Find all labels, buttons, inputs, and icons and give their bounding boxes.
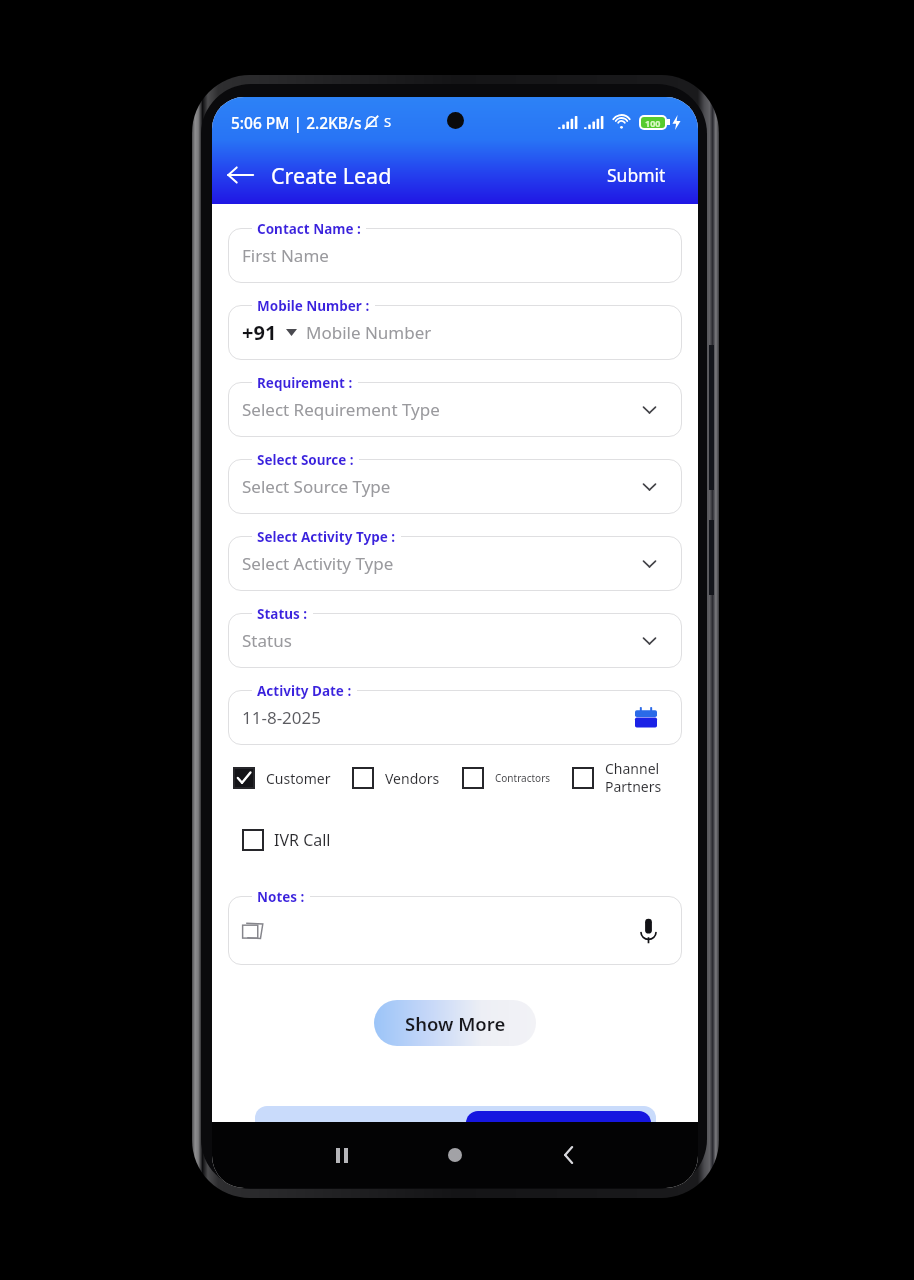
button[interactable]: Recents (325, 1138, 359, 1172)
staticText: Customer (266, 769, 331, 788)
staticText: Select Source Type (242, 475, 391, 498)
staticText: Select Requirement Type (242, 398, 440, 421)
staticText: First Name (242, 244, 329, 267)
staticText: Activity Date : (257, 682, 352, 700)
button[interactable] (228, 896, 682, 965)
button[interactable]: Select Source Type (228, 459, 682, 514)
staticText: 100 (645, 117, 661, 128)
staticText: Vendors (385, 769, 440, 788)
staticText: IVR Call (274, 829, 331, 851)
button[interactable]: Status (228, 613, 682, 668)
staticText: Notes : (257, 888, 305, 906)
button[interactable]: Back (222, 157, 258, 193)
staticText: Channel Partners (605, 759, 662, 796)
button[interactable]: IVR Call (242, 829, 331, 851)
button[interactable]: Select Activity Type (228, 536, 682, 591)
staticText: S (384, 113, 392, 131)
button[interactable]: Select Requirement Type (228, 382, 682, 437)
staticText: Mobile Number (306, 321, 432, 344)
button[interactable] (255, 1106, 656, 1146)
button[interactable]: Submit (603, 157, 670, 193)
button[interactable]: Home (438, 1138, 472, 1172)
staticText: 5:06 PM | 2.2KB/s (231, 112, 362, 133)
button[interactable]: Show More (374, 1000, 536, 1046)
staticText: 11-8-2025 (242, 706, 322, 729)
button[interactable]: First Name (228, 228, 682, 283)
button[interactable] (466, 1111, 651, 1151)
button[interactable]: Contractors (462, 767, 551, 789)
staticText: Create Lead (271, 161, 392, 190)
staticText: Contractors (495, 771, 551, 785)
staticText: Submit (607, 163, 666, 187)
button[interactable]: Channel Partners (572, 759, 662, 796)
button[interactable]: Customer (233, 767, 331, 789)
staticText: Contact Name : (257, 220, 361, 238)
staticText: Status (242, 629, 292, 652)
button[interactable]: Back (551, 1138, 585, 1172)
button[interactable]: +91 (228, 305, 682, 360)
staticText: Mobile Number : (257, 297, 370, 315)
staticText: Select Source : (257, 451, 354, 469)
button[interactable]: Vendors (352, 767, 440, 789)
staticText: +91 (242, 319, 277, 346)
staticText: Status : (257, 605, 308, 623)
staticText: Requirement : (257, 374, 353, 392)
staticText: Show More (405, 1011, 506, 1036)
staticText: Select Activity Type : (257, 528, 396, 546)
staticText: Select Activity Type (242, 552, 394, 575)
button[interactable]: 11-8-2025 (228, 690, 682, 745)
